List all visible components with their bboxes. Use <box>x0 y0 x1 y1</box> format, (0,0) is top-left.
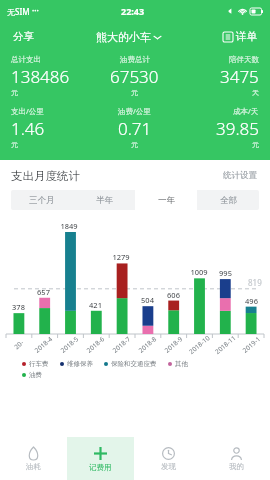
staticText: 2018-4 <box>33 334 54 355</box>
staticText: 支出月度统计 <box>11 169 80 183</box>
staticText: 全部 <box>220 195 237 206</box>
other: 我的 <box>230 447 243 460</box>
staticText: 发现 <box>161 462 176 471</box>
staticText: 总计支出 <box>11 55 41 64</box>
staticText: 22:43 <box>121 5 145 17</box>
button[interactable]: 熊大的小车 <box>94 28 163 46</box>
staticText: 天 <box>252 88 259 97</box>
staticText: 一年 <box>158 195 175 206</box>
staticText: 496 <box>245 296 258 306</box>
staticText: 维修保养 <box>67 360 93 368</box>
staticText: 995 <box>219 268 232 278</box>
other: 油耗 <box>27 447 40 460</box>
button[interactable]: 详单 <box>221 28 259 45</box>
staticText: 39.85 <box>216 117 259 140</box>
staticText: 606 <box>167 290 180 300</box>
staticText: 熊大的小车 <box>96 30 151 44</box>
staticText: 元 <box>131 140 138 149</box>
staticText: 油耗 <box>26 462 41 471</box>
staticText: 1.46 <box>11 117 45 140</box>
staticText: 油费/公里 <box>118 106 151 116</box>
staticText: 2018-8 <box>137 334 158 355</box>
staticText: 1279 <box>112 252 130 262</box>
staticText: 详单 <box>236 30 257 43</box>
staticText: 2018-10 <box>187 333 212 356</box>
button[interactable]: 记费用 <box>67 437 134 480</box>
button[interactable]: 三个月 <box>11 190 73 210</box>
button[interactable]: 油耗 <box>0 437 67 480</box>
staticText: 378 <box>12 302 25 312</box>
staticText: 2018-7 <box>111 334 132 355</box>
staticText: 67530 <box>110 65 159 88</box>
button[interactable]: 一年 <box>135 190 197 210</box>
staticText: 1009 <box>190 267 208 277</box>
staticText: 元 <box>11 88 18 97</box>
staticText: 元 <box>131 88 138 97</box>
staticText: 三个月 <box>29 195 55 206</box>
staticText: 138486 <box>11 65 70 88</box>
staticText: 半年 <box>96 195 113 206</box>
staticText: 成本/天 <box>233 106 259 116</box>
staticText: 元 <box>11 140 18 149</box>
button[interactable]: 统计设置 <box>221 168 259 183</box>
staticText: 657 <box>37 287 50 297</box>
staticText: 油费总计 <box>120 55 150 64</box>
staticText: 油费 <box>29 371 42 379</box>
staticText: 我的 <box>229 462 244 471</box>
staticText: 819 <box>248 277 262 288</box>
staticText: 2018-9 <box>163 334 184 355</box>
staticText: 2018-6 <box>85 334 106 355</box>
staticText: 504 <box>141 295 154 305</box>
staticText: 统计设置 <box>223 170 257 181</box>
staticText: 421 <box>89 300 102 310</box>
staticText: 无SIM <box>7 6 30 17</box>
staticText: 其他 <box>175 360 188 368</box>
staticText: 保险和交通应费 <box>111 360 157 368</box>
staticText: 行车费 <box>29 360 49 368</box>
staticText: 分享 <box>13 30 34 43</box>
button[interactable]: 半年 <box>73 190 135 210</box>
staticText: 支出/公里 <box>11 106 44 116</box>
staticText: 20- <box>12 338 26 351</box>
staticText: 1849 <box>60 221 78 231</box>
staticText: 2019-1 <box>241 334 262 355</box>
other: 发现 <box>162 447 175 460</box>
staticText: 记费用 <box>89 463 112 472</box>
staticText: 陪伴天数 <box>229 55 259 64</box>
button[interactable]: 发现 <box>134 437 202 480</box>
staticText: 0.71 <box>118 117 152 140</box>
staticText: 2018-5 <box>59 334 80 355</box>
staticText: 元 <box>252 140 259 149</box>
button[interactable]: 分享 <box>11 28 36 45</box>
button[interactable]: 我的 <box>202 437 270 480</box>
staticText: 3475 <box>220 65 259 88</box>
button[interactable]: 全部 <box>197 190 259 210</box>
staticText: 2018-11 <box>213 333 238 356</box>
staticText: ••• <box>32 7 39 15</box>
